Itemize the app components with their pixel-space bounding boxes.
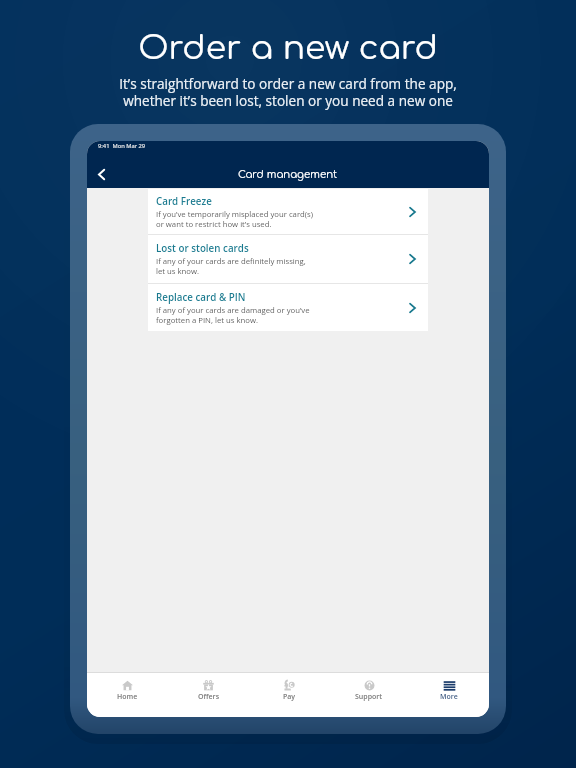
button[interactable]: Pay xyxy=(249,680,329,717)
staticText: Offers xyxy=(198,692,220,702)
staticText: Order a new card xyxy=(0,30,576,67)
staticText: If you’ve temporarily misplaced your car… xyxy=(156,209,314,229)
staticText: 9:41 Mon Mar 29 xyxy=(98,142,146,150)
staticText: It’s straightforward to order a new card… xyxy=(0,74,576,110)
staticText: Home xyxy=(117,692,138,702)
button[interactable]: More xyxy=(409,680,489,717)
staticText: Lost or stolen cards xyxy=(156,242,249,255)
staticText: Pay xyxy=(283,692,296,702)
staticText: Replace card & PIN xyxy=(156,291,246,304)
staticText: Card management xyxy=(238,169,338,180)
button[interactable]: Card Freeze xyxy=(148,189,428,234)
button[interactable]: Replace card & PIN xyxy=(148,284,428,331)
button[interactable]: Offers xyxy=(168,680,249,717)
staticText: If any of your cards are definitely miss… xyxy=(156,256,306,276)
button[interactable]: Lost or stolen cards xyxy=(148,235,428,283)
staticText: More xyxy=(440,692,458,702)
button[interactable]: Support xyxy=(329,680,409,717)
staticText: Card Freeze xyxy=(156,195,212,208)
staticText: Support xyxy=(355,692,383,702)
staticText: If any of your cards are damaged or you’… xyxy=(156,305,310,325)
button[interactable]: Home xyxy=(87,680,168,717)
button[interactable]: Back xyxy=(87,160,115,188)
